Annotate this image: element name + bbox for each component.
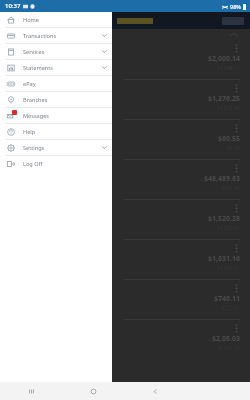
staticText: Settings [23,144,102,152]
button[interactable]: Messages [0,108,112,123]
button[interactable]: $60.55 [0,120,250,159]
staticText: $1,276.25 [208,94,240,104]
button[interactable]: Settings [0,140,112,155]
button[interactable]: Transactions [0,28,112,43]
button[interactable]: $48,489.63 [0,160,250,199]
staticText: $2,000.14 [208,54,240,64]
staticText: $2,05.03 [212,334,240,344]
staticText: 98% [230,3,241,10]
staticText: Transactions [23,32,102,40]
staticText: $48,489.63 [204,174,240,184]
staticText: Home [23,16,107,24]
staticText: $60.55 [218,134,240,144]
button[interactable]: $746.11 [0,280,250,319]
button[interactable]: $2,05.03 [0,320,250,359]
button[interactable]: Statements [0,60,112,75]
staticText: ePay [23,80,107,88]
button[interactable]: Home [62,382,124,400]
button[interactable]: Services [0,44,112,59]
button[interactable]: $2,000.14 [0,40,250,79]
button[interactable]: ePay [0,76,112,91]
staticText: $1,520.28 [208,214,240,224]
button[interactable]: Help [0,124,112,139]
staticText: Log Off [23,160,107,168]
button[interactable]: $1,031.16 [0,240,250,279]
staticText: Statements [23,64,102,72]
button[interactable]: Recent apps [0,382,62,400]
staticText: 10:37 [5,2,21,10]
button[interactable]: Log Off [0,156,112,171]
staticText: Branches [23,96,107,104]
staticText: Help [23,128,107,136]
staticText: $1,031.16 [208,254,240,264]
button[interactable]: $1,276.25 [0,80,250,119]
staticText: Services [23,48,102,56]
staticText: Messages [23,112,107,120]
button[interactable]: Back [124,382,187,400]
button[interactable]: $1,520.28 [0,200,250,239]
staticText: $746.11 [214,294,240,304]
button[interactable]: Branches [0,92,112,107]
button[interactable]: Home [0,12,112,27]
